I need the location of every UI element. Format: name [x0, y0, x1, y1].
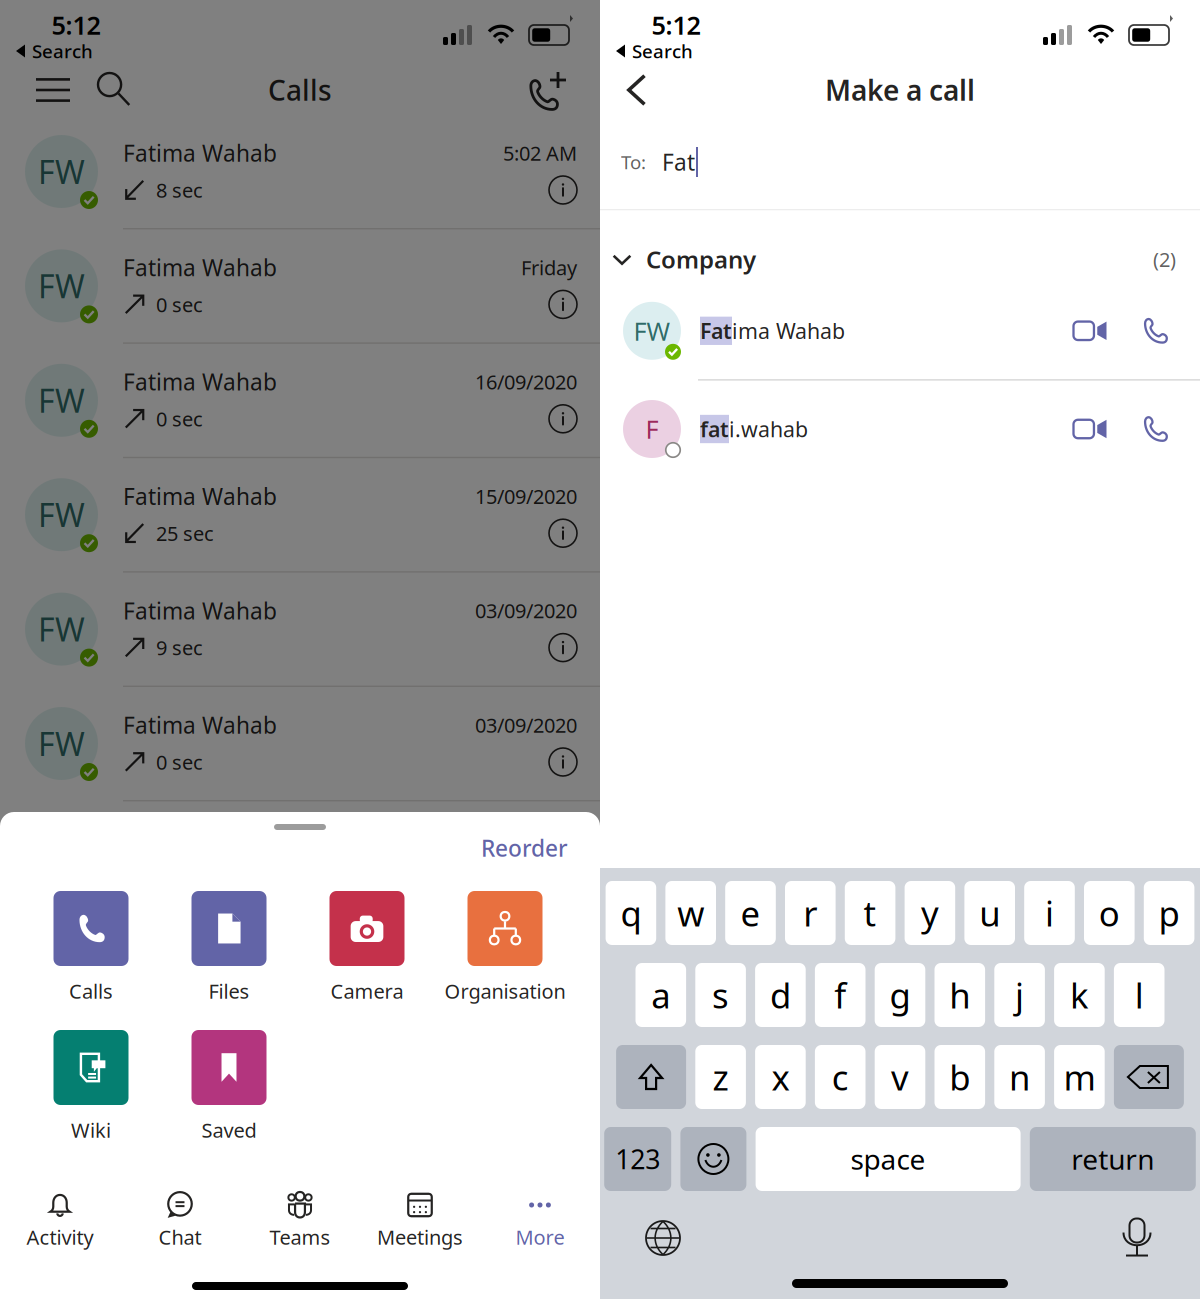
button[interactable]: Dictate [1110, 1211, 1164, 1265]
button[interactable]: Meetings [360, 1190, 480, 1248]
button[interactable]: a [635, 963, 686, 1027]
button[interactable]: FW [600, 282, 1200, 379]
staticText: More [515, 1224, 564, 1250]
staticText: FW [38, 265, 85, 307]
staticText: 123 [615, 1141, 660, 1177]
button[interactable]: m [1054, 1045, 1105, 1109]
button[interactable]: k [1054, 963, 1105, 1027]
button[interactable]: Calls [22, 891, 160, 1002]
button[interactable]: Organisation [436, 891, 574, 1002]
button[interactable]: Chat [120, 1190, 240, 1248]
button[interactable]: Video call [1066, 405, 1114, 453]
button[interactable]: e [725, 881, 776, 945]
button[interactable]: Search [92, 65, 138, 115]
staticText: 0 sec [156, 405, 203, 432]
staticText: Wiki [71, 1117, 111, 1143]
button[interactable]: Files [160, 891, 298, 1002]
button[interactable]: Teams [240, 1190, 360, 1248]
staticText: z [713, 1054, 729, 1100]
staticText: Search [32, 39, 93, 63]
button[interactable]: n [994, 1045, 1045, 1109]
button[interactable]: Shift [616, 1045, 686, 1109]
staticText: i.wahab [729, 415, 808, 443]
button[interactable]: Wiki [22, 1030, 160, 1141]
button[interactable]: Search [0, 37, 93, 65]
staticText: 16/09/2020 [475, 368, 577, 395]
button[interactable]: j [994, 963, 1045, 1027]
staticText: Fatima Wahab [123, 367, 277, 397]
staticText: return [1071, 1140, 1154, 1178]
button[interactable]: Delete [1114, 1045, 1184, 1109]
button[interactable]: Company [611, 234, 756, 284]
button[interactable]: o [1084, 881, 1135, 945]
staticText: u [979, 890, 1000, 936]
staticText: 15/09/2020 [475, 483, 577, 509]
button[interactable]: FW [0, 573, 600, 686]
button[interactable]: Back [610, 63, 664, 117]
button[interactable]: w [665, 881, 716, 945]
button[interactable]: FW [0, 115, 600, 228]
button[interactable]: FW [0, 687, 600, 800]
button[interactable]: r [785, 881, 836, 945]
button[interactable]: More [480, 1190, 600, 1248]
staticText: Fat [662, 147, 695, 177]
staticText: e [740, 890, 760, 936]
staticText: i [1045, 890, 1054, 936]
staticText: Search [632, 39, 693, 63]
staticText: FW [633, 314, 670, 348]
staticText: Organisation [444, 978, 565, 1004]
button[interactable]: l [1114, 963, 1164, 1027]
staticText: 03/09/2020 [475, 597, 577, 624]
button[interactable]: Emoji [680, 1127, 746, 1191]
button[interactable]: Search [600, 37, 693, 65]
button[interactable]: F [600, 380, 1200, 477]
staticText: Chat [158, 1224, 201, 1250]
button[interactable]: Change keyboard [636, 1211, 690, 1265]
button[interactable]: b [934, 1045, 985, 1109]
button[interactable]: c [815, 1045, 865, 1109]
staticText: space [851, 1140, 926, 1178]
button[interactable]: p [1144, 881, 1194, 945]
button[interactable]: y [905, 881, 955, 945]
button[interactable]: v [875, 1045, 925, 1109]
button[interactable]: q [606, 881, 656, 945]
staticText: fat [700, 415, 729, 443]
staticText: FW [38, 493, 85, 536]
button[interactable]: Video call [1066, 307, 1114, 355]
staticText: Fatima Wahab [123, 252, 277, 282]
button[interactable]: 123 [604, 1127, 671, 1191]
staticText: 9 sec [156, 634, 203, 661]
staticText: l [1135, 972, 1144, 1018]
button[interactable]: FW [0, 458, 600, 571]
button[interactable]: Reorder [481, 836, 600, 860]
button[interactable]: Camera [298, 891, 436, 1002]
button[interactable]: Menu [30, 65, 76, 115]
button[interactable]: Audio call [1131, 307, 1179, 355]
button[interactable]: space [756, 1127, 1021, 1191]
button[interactable]: FW [0, 344, 600, 457]
button[interactable]: Saved [160, 1030, 298, 1141]
staticText: Calls [268, 71, 332, 109]
button[interactable]: t [845, 881, 895, 945]
button[interactable]: FW [0, 229, 600, 342]
button[interactable]: New call [524, 65, 572, 115]
staticText: p [1159, 890, 1180, 936]
button[interactable]: s [695, 963, 746, 1027]
button[interactable]: Audio call [1131, 405, 1179, 453]
staticText: Friday [521, 254, 577, 281]
staticText: Fatima Wahab [123, 138, 277, 168]
staticText: 03/09/2020 [475, 712, 577, 738]
button[interactable]: h [934, 963, 985, 1027]
button[interactable]: d [755, 963, 806, 1027]
button[interactable]: x [755, 1045, 806, 1109]
button[interactable]: f [815, 963, 865, 1027]
staticText: n [1009, 1054, 1030, 1100]
button[interactable]: z [695, 1045, 746, 1109]
button[interactable]: Activity [0, 1190, 120, 1248]
button[interactable]: return [1030, 1127, 1196, 1191]
staticText: Saved [201, 1117, 256, 1143]
button[interactable]: g [875, 963, 925, 1027]
button[interactable]: u [964, 881, 1015, 945]
staticText: c [832, 1054, 849, 1100]
button[interactable]: i [1024, 881, 1075, 945]
